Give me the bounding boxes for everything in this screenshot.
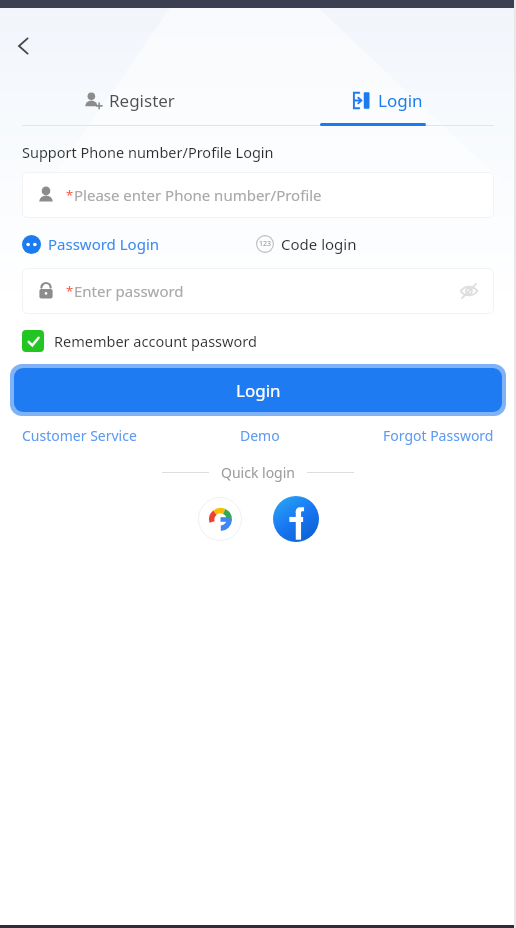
button[interactable]: Remember account password [22, 330, 257, 352]
button[interactable]: Register [0, 78, 258, 122]
staticText: Quick login [221, 463, 295, 482]
button[interactable]: * [22, 172, 494, 218]
staticText: Login [236, 379, 281, 402]
staticText: Demo [240, 426, 280, 445]
staticText: 123 [259, 239, 272, 249]
button[interactable]: Forgot Password [383, 426, 494, 445]
button[interactable]: Customer Service [22, 426, 137, 445]
staticText: Login [378, 89, 423, 112]
button[interactable]: Login [258, 78, 516, 122]
button[interactable]: Demo [240, 426, 280, 445]
staticText: Support Phone number/Profile Login [22, 142, 274, 162]
staticText: Password Login [48, 234, 160, 254]
button[interactable]: Password Login [22, 234, 160, 254]
staticText: Remember account password [54, 331, 257, 351]
button[interactable]: Back [2, 24, 46, 68]
staticText: * [66, 186, 74, 204]
staticText: Register [109, 89, 175, 112]
button[interactable]: Login [10, 364, 506, 416]
button[interactable]: 123 [256, 234, 357, 254]
staticText: Code login [281, 234, 357, 254]
staticText: Enter password [74, 281, 184, 301]
staticText: * [66, 282, 74, 300]
button[interactable]: * [22, 268, 494, 314]
staticText: Customer Service [22, 426, 137, 445]
button[interactable]: Sign in with Google [197, 496, 243, 542]
staticText: Please enter Phone number/Profile [74, 185, 322, 205]
staticText: Forgot Password [383, 426, 494, 445]
button[interactable]: Sign in with Facebook [273, 496, 319, 542]
